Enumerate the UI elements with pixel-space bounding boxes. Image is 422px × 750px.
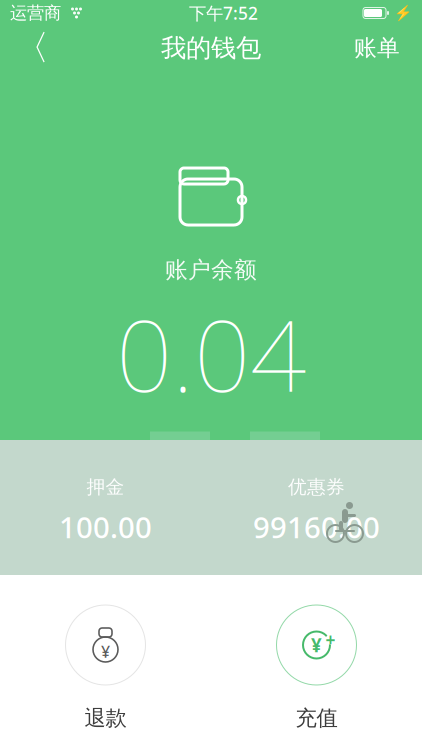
button[interactable]: ¥ <box>0 597 211 737</box>
staticText: 0.04 <box>116 288 306 419</box>
staticText: 优惠券 <box>288 476 345 498</box>
button[interactable]: 返回 <box>6 26 58 70</box>
staticText: + <box>325 628 335 651</box>
button[interactable]: 账单 <box>338 26 416 70</box>
staticText: 账单 <box>354 34 400 62</box>
staticText: 100.00 <box>59 507 152 546</box>
staticText: 运营商 <box>10 2 61 24</box>
staticText: 下午7:52 <box>189 1 258 24</box>
staticText: 〈 <box>14 27 49 69</box>
staticText: ¥ <box>101 641 110 662</box>
staticText: 99160.00 <box>253 507 380 546</box>
button[interactable]: ¥ <box>211 597 422 737</box>
staticText: ⚡ <box>394 5 412 21</box>
staticText: ¥ <box>311 633 322 657</box>
staticText: 账户余额 <box>165 256 257 284</box>
staticText: 押金 <box>86 476 124 498</box>
staticText: 我的钱包 <box>161 32 261 63</box>
staticText: 充值 <box>295 705 337 731</box>
staticText: 退款 <box>84 705 126 731</box>
